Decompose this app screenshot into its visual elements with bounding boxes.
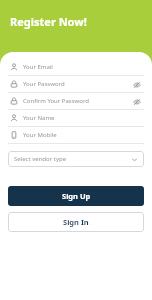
staticText: Your Email [23, 63, 142, 71]
button[interactable]: Show password [131, 79, 142, 90]
button[interactable]: Select vendor type [8, 151, 144, 167]
button[interactable]: Your Email [8, 59, 144, 75]
staticText: Your Mobile [23, 131, 142, 139]
staticText: Register Now! [10, 14, 87, 29]
button[interactable]: Sign In [8, 212, 144, 232]
staticText: Sign In [63, 217, 89, 227]
button[interactable]: Your Name [8, 110, 144, 126]
staticText: Confirm Your Password [23, 97, 131, 105]
button[interactable]: Show password [131, 96, 142, 107]
button[interactable]: Confirm Your Password [8, 93, 144, 109]
button[interactable]: Your Mobile [8, 127, 144, 143]
staticText: Select vendor type [14, 155, 131, 163]
staticText: Sign Up [62, 191, 91, 201]
button[interactable]: Sign Up [8, 186, 144, 206]
staticText: Your Password [23, 80, 131, 88]
button[interactable]: Your Password [8, 76, 144, 92]
staticText: Your Name [23, 114, 142, 122]
